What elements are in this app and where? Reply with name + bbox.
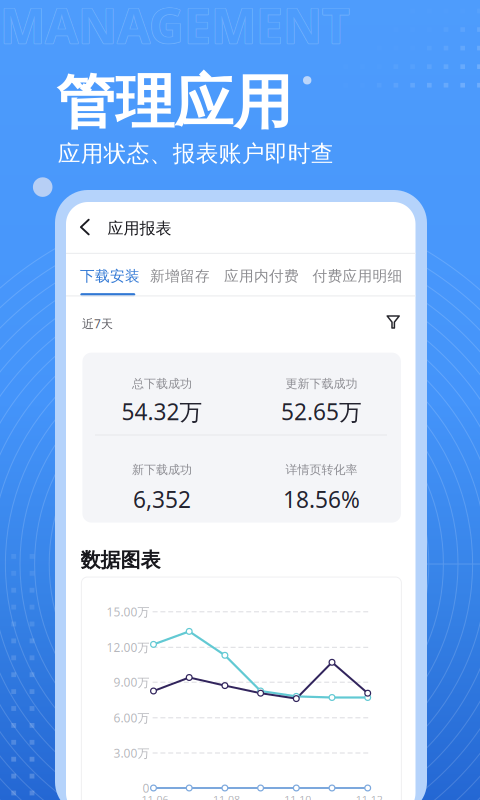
staticText: MANAGEMENT bbox=[0, 0, 350, 57]
staticText: MANAGEMENT bbox=[0, 0, 349, 57]
staticText: 应用状态、报表账户即时查 bbox=[58, 140, 334, 167]
staticText: 总下载成功 bbox=[132, 376, 192, 391]
button[interactable]: 应用内付费 bbox=[219, 260, 304, 293]
button[interactable]: 新增留存 bbox=[145, 260, 215, 293]
staticText: 6,352 bbox=[133, 484, 191, 514]
staticText: 下载安装 bbox=[80, 267, 140, 285]
staticText: 3.00万 bbox=[113, 745, 149, 761]
staticText: 11-12 bbox=[356, 792, 383, 800]
staticText: MANAGEMENT bbox=[0, 0, 350, 57]
button[interactable]: Filter bbox=[377, 306, 409, 338]
button[interactable]: 付费应用明细 bbox=[308, 260, 407, 293]
staticText: 15.00万 bbox=[106, 604, 149, 620]
staticText: 11-10 bbox=[284, 792, 311, 800]
staticText: 54.32万 bbox=[121, 396, 202, 426]
staticText: 详情页转化率 bbox=[285, 462, 357, 477]
staticText: MANAGEMENT bbox=[1, 0, 351, 57]
staticText: 11-08 bbox=[213, 792, 240, 800]
staticText: 管理应用 bbox=[57, 67, 293, 139]
staticText: MANAGEMENT bbox=[0, 0, 350, 57]
staticText: 近7天 bbox=[82, 315, 113, 331]
staticText: 新下载成功 bbox=[132, 462, 192, 477]
staticText: 52.65万 bbox=[281, 396, 362, 426]
staticText: 更新下载成功 bbox=[285, 376, 357, 391]
staticText: 6.00万 bbox=[113, 710, 149, 726]
staticText: 12.00万 bbox=[106, 639, 149, 655]
staticText: MANAGEMENT bbox=[0, 0, 350, 56]
staticText: 18.56% bbox=[283, 484, 360, 514]
staticText: MANAGEMENT bbox=[0, 0, 350, 56]
button[interactable]: 下载安装 bbox=[75, 260, 145, 293]
staticText: 应用内付费 bbox=[224, 267, 299, 285]
button[interactable]: Back bbox=[70, 209, 100, 245]
staticText: 11-06 bbox=[141, 792, 168, 800]
staticText: 9.00万 bbox=[113, 674, 149, 690]
staticText: MANAGEMENT bbox=[0, 0, 350, 57]
staticText: 0 bbox=[142, 780, 149, 796]
staticText: 新增留存 bbox=[150, 267, 210, 285]
staticText: 数据图表 bbox=[81, 548, 161, 572]
staticText: MANAGEMENT bbox=[0, 0, 350, 56]
staticText: 付费应用明细 bbox=[312, 267, 402, 285]
staticText: 应用报表 bbox=[107, 219, 171, 238]
